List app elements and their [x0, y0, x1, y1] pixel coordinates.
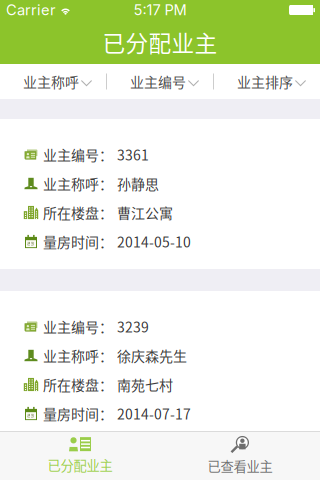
button[interactable]: 业主编号 — [107, 64, 213, 99]
staticText: 2014-07-17 — [117, 403, 191, 424]
staticText: 所在楼盘： — [43, 374, 113, 395]
button[interactable]: 业主编号： — [0, 291, 320, 441]
staticText: 业主称呼 — [23, 71, 79, 92]
staticText: 业主编号： — [43, 144, 113, 165]
staticText: Carrier — [6, 1, 56, 19]
staticText: 徐庆森先生 — [117, 345, 187, 366]
staticText: 量房时间： — [43, 403, 113, 424]
staticText: 业主编号 — [130, 71, 186, 92]
staticText: 3361 — [117, 144, 149, 165]
staticText: 所在楼盘： — [43, 202, 113, 223]
staticText: 南苑七村 — [117, 374, 173, 395]
staticText: 已分配业主 — [47, 455, 112, 475]
staticText: 已分配业主 — [102, 26, 217, 58]
staticText: 孙静思 — [117, 173, 159, 194]
staticText: 5:17 PM — [133, 1, 186, 19]
staticText: 已查看业主 — [207, 456, 272, 476]
button[interactable]: 已查看业主 — [160, 431, 320, 480]
staticText: 业主编号： — [43, 316, 113, 337]
staticText: 量房时间： — [43, 231, 113, 252]
staticText: 曹江公寓 — [117, 202, 173, 223]
staticText: 2014-05-10 — [117, 231, 191, 252]
button[interactable]: 业主编号： — [0, 119, 320, 269]
button[interactable]: 业主称呼 — [0, 64, 106, 99]
staticText: 业主排序 — [237, 71, 293, 92]
staticText: 3239 — [117, 316, 149, 337]
button[interactable]: 已分配业主 — [0, 431, 160, 480]
button[interactable]: 业主排序 — [214, 64, 320, 99]
staticText: 业主称呼： — [43, 345, 113, 366]
staticText: 业主称呼： — [43, 173, 113, 194]
